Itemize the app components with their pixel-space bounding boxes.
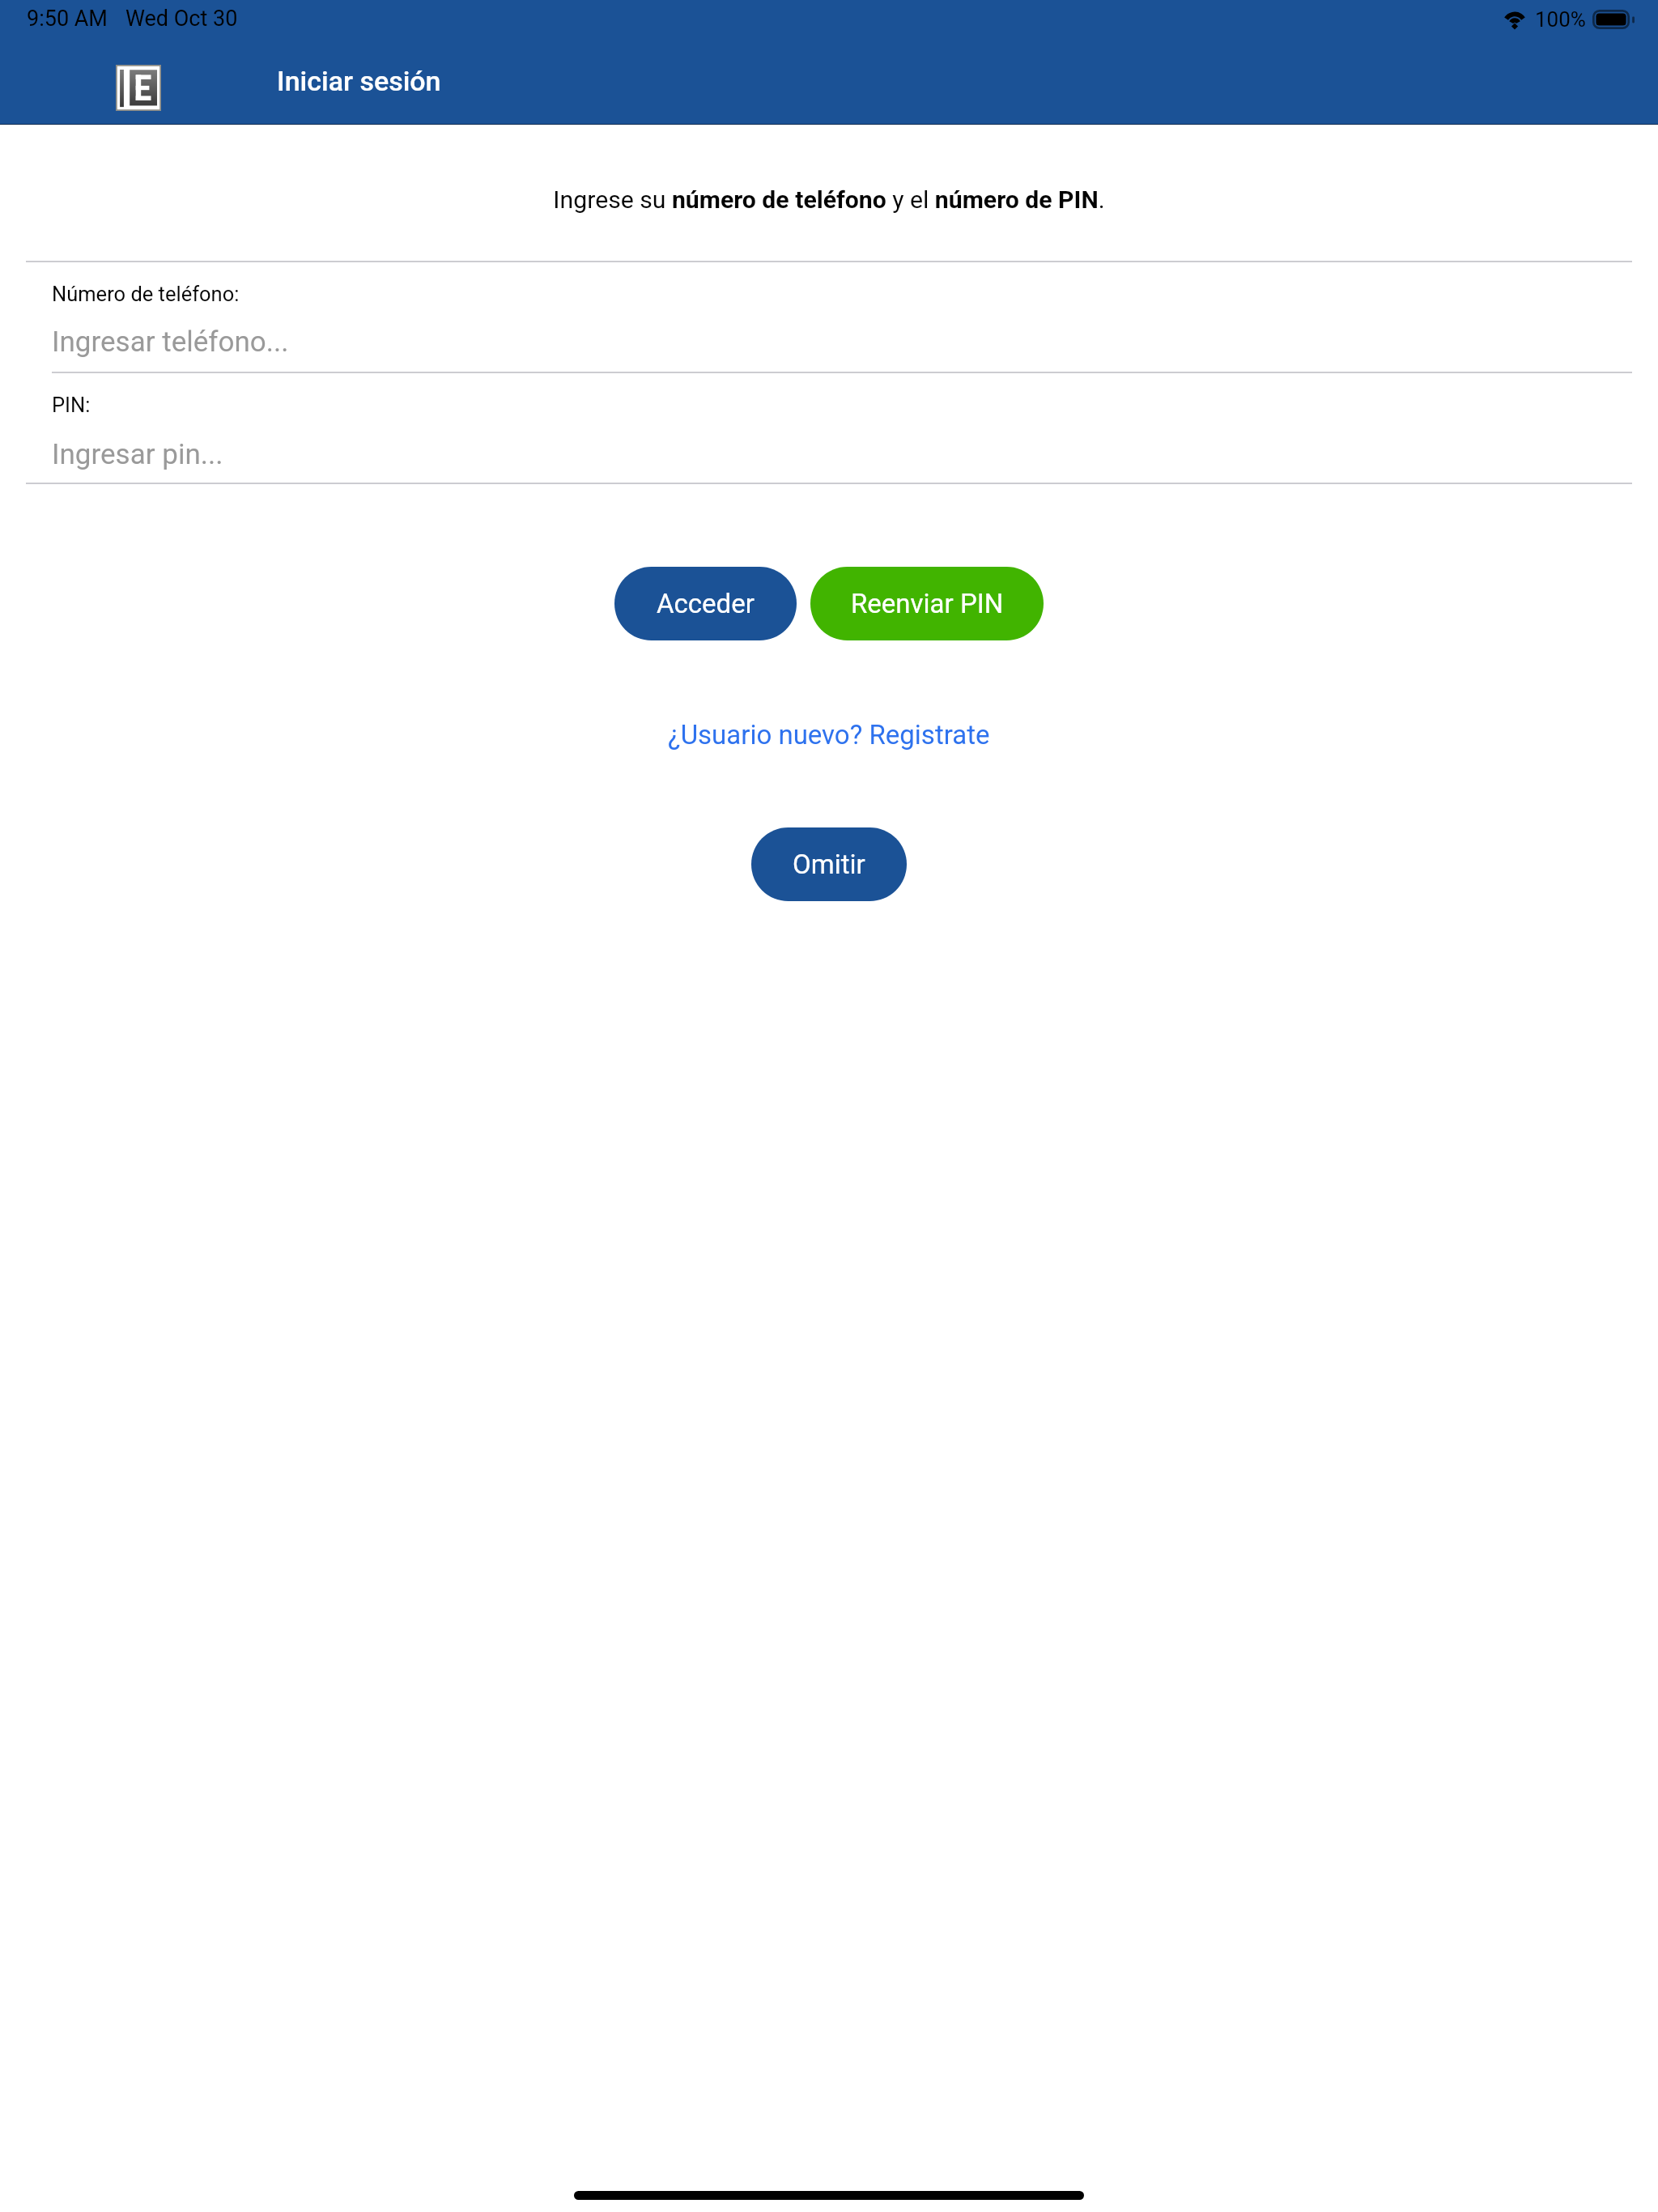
button[interactable]: Reenviar PIN — [810, 567, 1044, 640]
staticText: Ingresar pin... — [52, 438, 223, 471]
button[interactable]: Omitir — [751, 827, 907, 901]
other: Battery 100 percent — [1592, 10, 1635, 29]
button[interactable]: Número de teléfono — [0, 262, 1658, 372]
button[interactable]: App logo — [116, 65, 161, 111]
staticText: Ingresar teléfono... — [52, 325, 289, 359]
staticText: Número de teléfono: — [52, 282, 240, 306]
staticText: Omitir — [793, 849, 865, 880]
staticText: 9:50 AM — [27, 6, 108, 32]
button[interactable]: PIN — [0, 373, 1658, 483]
staticText: Ingrese su número de teléfono y el númer… — [553, 185, 1105, 214]
staticText: PIN: — [52, 393, 91, 417]
staticText: Acceder — [657, 588, 755, 619]
staticText: ¿Usuario nuevo? Registrate — [668, 719, 990, 751]
staticText: Reenviar PIN — [851, 588, 1004, 619]
staticText: Iniciar sesión — [277, 65, 441, 97]
button[interactable]: Acceder — [614, 567, 797, 640]
button[interactable]: ¿Usuario nuevo? Registrate — [668, 719, 990, 751]
other: Wi-Fi — [1503, 11, 1526, 29]
staticText: Wed Oct 30 — [125, 6, 238, 32]
staticText: 100% — [1535, 7, 1586, 32]
